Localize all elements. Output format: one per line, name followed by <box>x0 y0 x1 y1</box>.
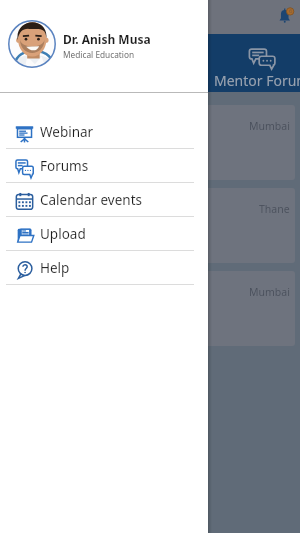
staticText: Dr. Anish Musa <box>63 31 151 47</box>
staticText: Mumbai <box>249 285 290 299</box>
staticText: Calendar events <box>40 191 143 209</box>
staticText: Mentor Forum <box>214 71 300 90</box>
button[interactable]: Dr. Anish Musa <box>0 0 208 93</box>
staticText: Thane <box>259 202 290 216</box>
staticText: Help <box>40 259 70 277</box>
button[interactable]: Mumbai <box>8 271 295 346</box>
staticText: Medical Education <box>63 49 135 60</box>
button[interactable]: Calendar events <box>0 183 208 216</box>
staticText: Upload <box>40 225 86 243</box>
staticText: Webinar <box>40 123 94 141</box>
staticText: 6 <box>289 7 293 15</box>
button[interactable]: Forums <box>0 149 208 182</box>
button[interactable]: Notifications <box>277 6 295 24</box>
button[interactable]: Upload <box>0 217 208 250</box>
button[interactable]: Help <box>0 251 208 284</box>
staticText: Mumbai <box>249 119 290 133</box>
button[interactable]: Mumbai <box>8 105 295 180</box>
button[interactable]: Thane <box>8 188 295 263</box>
staticText: Forums <box>40 157 89 175</box>
button[interactable]: Webinar <box>0 115 208 148</box>
